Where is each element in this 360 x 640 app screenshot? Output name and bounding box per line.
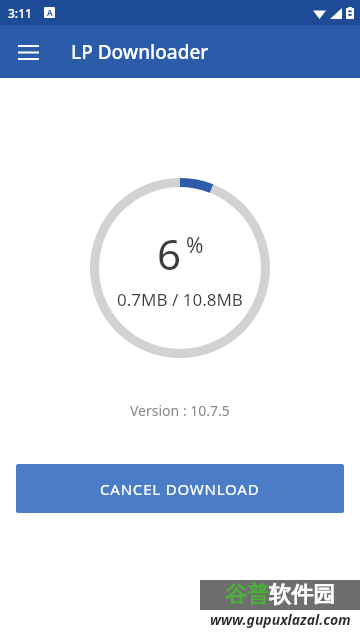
staticText: 3:11 <box>8 5 32 21</box>
staticText: 6 <box>157 225 182 282</box>
staticText: LP Downloader <box>71 39 209 65</box>
staticText: 软件园 <box>269 581 335 609</box>
staticText: A <box>47 7 53 18</box>
button[interactable]: CANCEL DOWNLOAD <box>16 464 344 513</box>
staticText: Version : 10.7.5 <box>130 401 230 420</box>
staticText: 谷普 <box>225 581 269 609</box>
button[interactable]: Open navigation menu <box>10 34 46 70</box>
staticText: CANCEL DOWNLOAD <box>100 479 260 499</box>
staticText: % <box>186 231 204 260</box>
staticText: 0.7MB / 10.8MB <box>117 288 243 311</box>
staticText: www.gupuxlazal.com <box>210 610 351 628</box>
